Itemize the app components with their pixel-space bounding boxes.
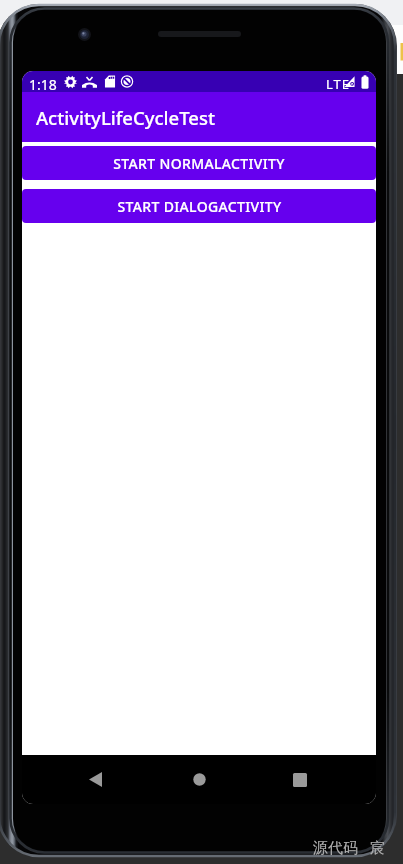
staticText: START DIALOGACTIVITY (117, 197, 282, 216)
staticText: 源代码 宸 (313, 837, 385, 857)
button[interactable]: Recent apps (284, 755, 316, 804)
staticText: 1:18 (29, 75, 57, 94)
button[interactable]: Back (79, 755, 111, 804)
staticText: START NORMALACTIVITY (113, 154, 285, 173)
button[interactable]: START DIALOGACTIVITY (22, 189, 376, 223)
staticText: LTE (326, 75, 351, 93)
button[interactable]: Home (183, 755, 215, 804)
staticText: ActivityLifeCycleTest (36, 105, 215, 130)
button[interactable]: START NORMALACTIVITY (22, 146, 376, 180)
